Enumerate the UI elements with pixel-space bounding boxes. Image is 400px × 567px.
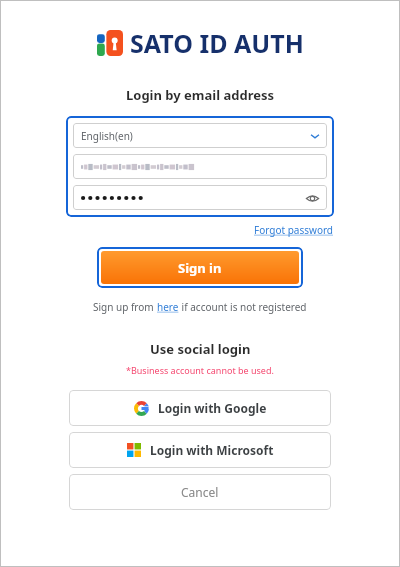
button[interactable]: Show password <box>305 191 319 205</box>
staticText: here <box>157 300 179 314</box>
button[interactable]: Sign in <box>101 251 299 284</box>
staticText: if account is not registered <box>179 300 307 314</box>
staticText: English(en) <box>81 129 311 143</box>
button[interactable]: Login with Google <box>69 390 331 426</box>
staticText: Use social login <box>150 340 251 358</box>
staticText: Sign in <box>178 259 222 277</box>
staticText: *Business account cannot be used. <box>126 364 274 376</box>
button[interactable]: Login with Microsoft <box>69 432 331 468</box>
button[interactable]: here <box>157 300 179 314</box>
staticText: Cancel <box>181 484 219 500</box>
button[interactable]: Forgot password <box>252 221 336 239</box>
button[interactable]: English(en) <box>73 123 327 148</box>
button[interactable]: Cancel <box>69 474 331 510</box>
staticText: Forgot password <box>254 223 334 237</box>
button[interactable] <box>73 154 327 179</box>
staticText: SATO ID AUTH <box>130 26 304 60</box>
staticText: Login by email address <box>126 86 275 104</box>
staticText: Login with Microsoft <box>150 442 274 458</box>
button[interactable]: Show password <box>73 185 327 210</box>
staticText: Sign up from <box>93 300 157 314</box>
staticText: Login with Google <box>158 400 267 416</box>
